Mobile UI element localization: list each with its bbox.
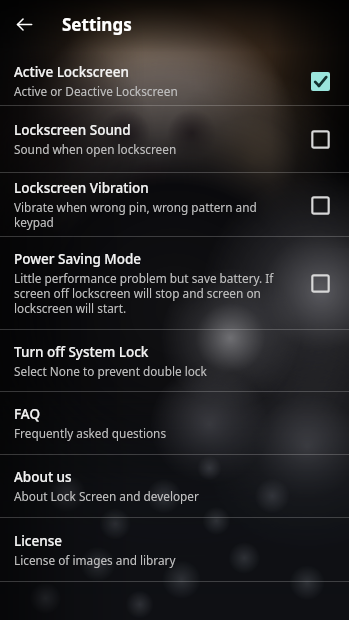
staticText: Lockscreen Sound [14,121,131,139]
staticText: Little performance problem but save batt… [14,270,295,316]
button[interactable]: FAQ [0,392,349,454]
button[interactable]: Lockscreen Vibration [301,186,339,224]
staticText: Select None to prevent double lock [14,363,207,379]
staticText: License [14,532,63,550]
button[interactable]: Lockscreen Sound [301,120,339,158]
staticText: License of images and library [14,552,176,568]
staticText: FAQ [14,405,41,423]
button[interactable] [0,582,349,620]
staticText: Sound when open lockscreen [14,141,177,157]
staticText: About Lock Screen and developer [14,488,199,504]
staticText: Settings [62,13,132,36]
button[interactable]: Lockscreen Vibration [0,173,349,236]
staticText: Frequently asked questions [14,425,167,441]
staticText: Vibrate when wrong pin, wrong pattern an… [14,199,295,230]
button[interactable]: Back [0,0,48,48]
button[interactable]: License [0,518,349,581]
staticText: About us [14,468,72,486]
button[interactable]: Power Saving Mode [301,264,339,302]
button[interactable]: Active Lockscreen [301,62,339,100]
button[interactable]: Active Lockscreen [0,57,349,105]
button[interactable]: Power Saving Mode [0,237,349,329]
button[interactable]: Turn off System Lock [0,330,349,391]
staticText: Power Saving Mode [14,250,142,268]
button[interactable]: Lockscreen Sound [0,106,349,172]
staticText: Active Lockscreen [14,63,129,81]
staticText: Turn off System Lock [14,343,149,361]
staticText: Active or Deactive Lockscreen [14,83,178,99]
staticText: Lockscreen Vibration [14,179,149,197]
button[interactable]: About us [0,455,349,517]
